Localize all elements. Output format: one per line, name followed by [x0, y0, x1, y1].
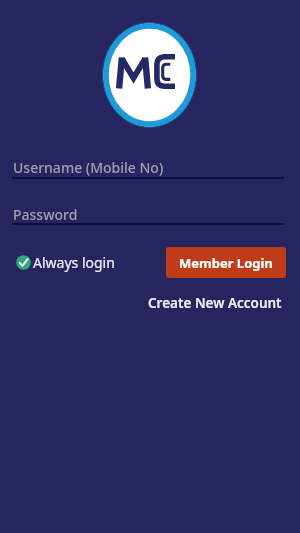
- button[interactable]: Always login: [12, 250, 112, 275]
- staticText: Create New Account: [148, 294, 282, 312]
- button[interactable]: Username (Mobile No): [12, 150, 284, 180]
- staticText: Always login: [33, 253, 115, 272]
- button[interactable]: Password: [12, 197, 284, 226]
- staticText: Password: [13, 205, 78, 224]
- staticText: Username (Mobile No): [13, 158, 164, 177]
- button[interactable]: Member Login: [166, 247, 286, 278]
- button[interactable]: Create New Account: [140, 291, 290, 315]
- staticText: Member Login: [179, 254, 273, 272]
